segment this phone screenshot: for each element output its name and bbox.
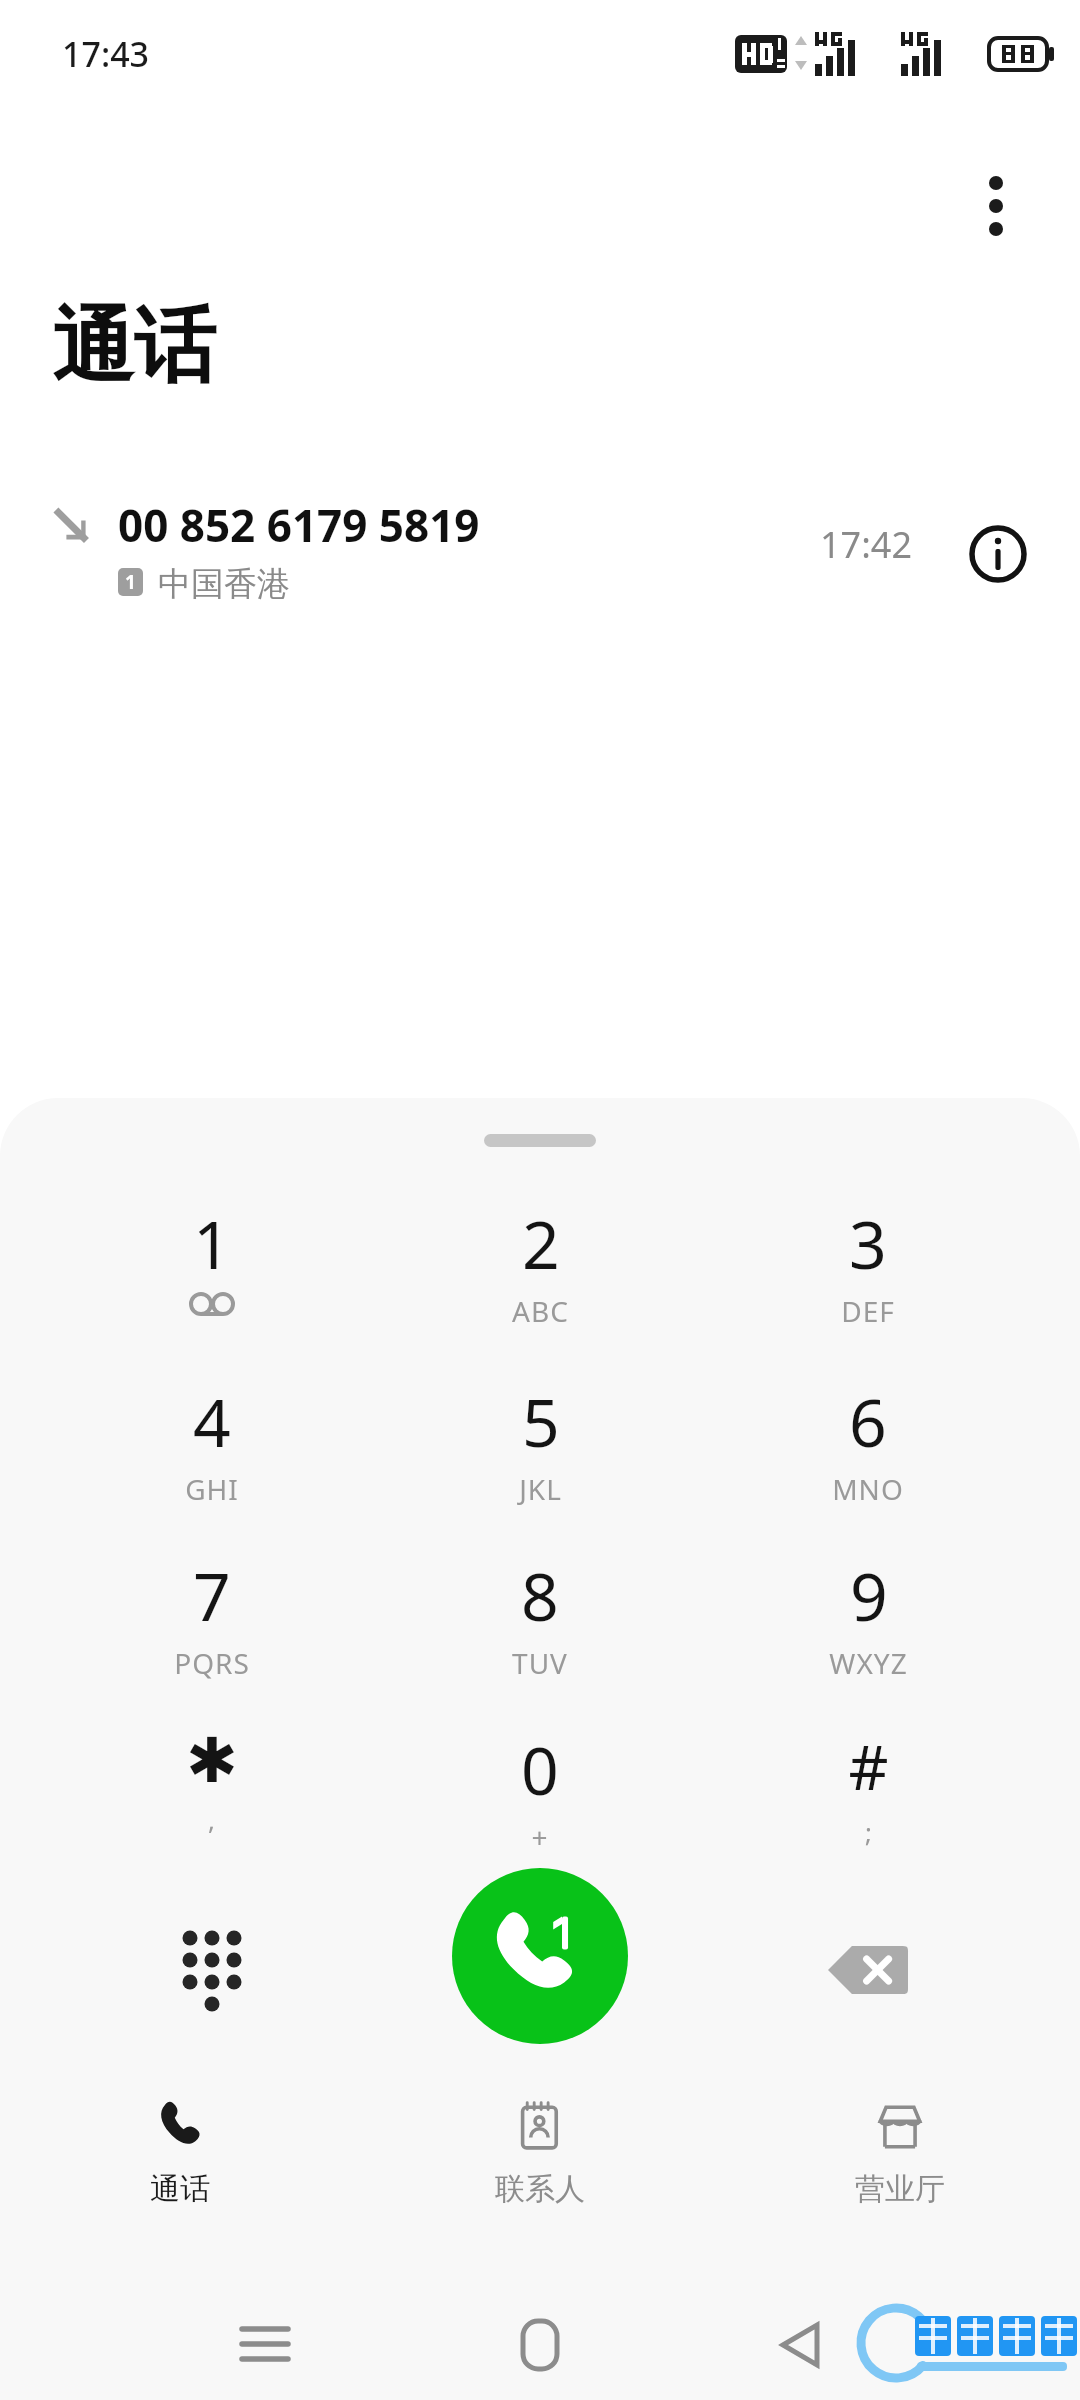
- button[interactable]: 营业厅: [720, 2098, 1080, 2268]
- staticText: JKL: [519, 1470, 562, 1508]
- staticText: ,: [208, 1802, 216, 1837]
- button[interactable]: #: [748, 1724, 988, 1874]
- button[interactable]: 7: [92, 1550, 332, 1700]
- staticText: WXYZ: [829, 1644, 908, 1682]
- button[interactable]: ✱: [92, 1724, 332, 1874]
- button[interactable]: Back: [740, 2300, 860, 2390]
- staticText: DEF: [841, 1292, 895, 1330]
- staticText: 00 852 6179 5819: [118, 495, 480, 555]
- staticText: 1: [125, 569, 136, 595]
- staticText: ;: [865, 1814, 873, 1849]
- staticText: 通话: [150, 2170, 210, 2208]
- button[interactable]: Call: [452, 1868, 628, 2044]
- staticText: 1: [193, 1198, 231, 1288]
- button[interactable]: 2: [420, 1198, 660, 1348]
- staticText: 8: [521, 1550, 559, 1640]
- staticText: ABC: [512, 1292, 569, 1330]
- button[interactable]: Recents: [205, 2300, 325, 2390]
- button[interactable]: 5: [420, 1376, 660, 1526]
- button[interactable]: 00 852 6179 5819: [0, 480, 1080, 640]
- staticText: 17:43: [62, 31, 150, 77]
- staticText: ✱: [186, 1724, 238, 1796]
- button[interactable]: 通话: [0, 2098, 360, 2268]
- button[interactable]: Home: [480, 2300, 600, 2390]
- staticText: +: [531, 1818, 549, 1856]
- button[interactable]: Delete: [808, 1910, 928, 2030]
- staticText: MNO: [832, 1470, 904, 1508]
- staticText: GHI: [185, 1470, 239, 1508]
- staticText: 9: [850, 1550, 888, 1640]
- staticText: #: [848, 1724, 889, 1808]
- staticText: 17:42: [820, 520, 913, 569]
- staticText: TUV: [512, 1644, 568, 1682]
- staticText: 中国香港: [158, 563, 290, 605]
- button[interactable]: 3: [748, 1198, 988, 1348]
- button[interactable]: More options: [950, 160, 1042, 252]
- button[interactable]: 4: [92, 1376, 332, 1526]
- button[interactable]: 1: [92, 1198, 332, 1348]
- staticText: 7: [193, 1550, 231, 1640]
- button[interactable]: 联系人: [360, 2098, 720, 2268]
- button[interactable]: Call details: [944, 500, 1052, 608]
- staticText: 2: [522, 1198, 560, 1288]
- staticText: 3: [849, 1198, 887, 1288]
- staticText: 4: [193, 1376, 231, 1466]
- staticText: PQRS: [174, 1644, 250, 1682]
- staticText: 5: [522, 1376, 560, 1466]
- staticText: 通话: [52, 295, 216, 398]
- staticText: 0: [521, 1724, 559, 1814]
- staticText: 6: [849, 1376, 887, 1466]
- staticText: 联系人: [495, 2170, 585, 2208]
- button[interactable]: 0: [420, 1724, 660, 1874]
- staticText: 营业厅: [855, 2170, 945, 2208]
- button[interactable]: Keypad: [152, 1910, 272, 2030]
- button[interactable]: 8: [420, 1550, 660, 1700]
- button[interactable]: 9: [748, 1550, 988, 1700]
- button[interactable]: 6: [748, 1376, 988, 1526]
